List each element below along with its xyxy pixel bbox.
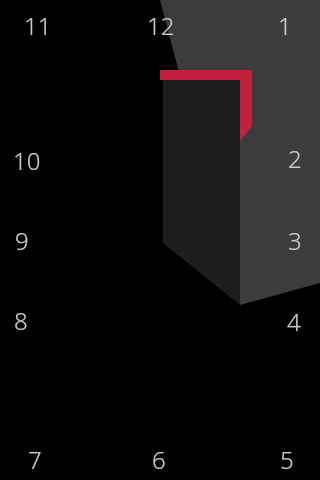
button[interactable]: Analog clock face — [0, 0, 320, 480]
